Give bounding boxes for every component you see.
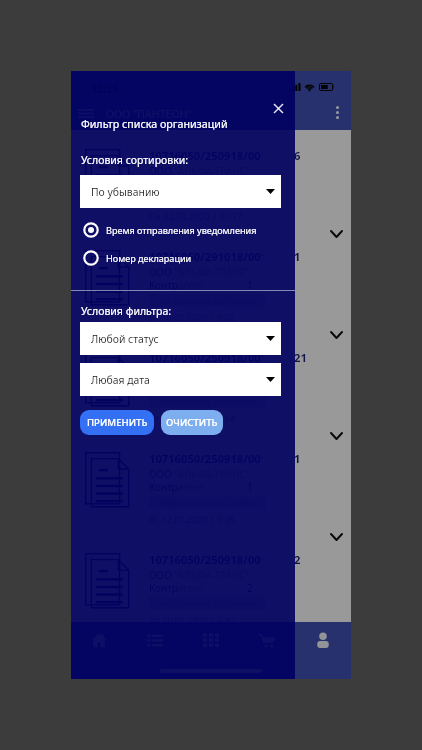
staticText: 10716050/250918/0012345: [149, 451, 263, 465]
button[interactable]: Expand: [322, 321, 350, 349]
button[interactable]: Номер декларации: [71, 246, 295, 270]
staticText: По убыванию: [91, 185, 160, 199]
staticText: ООО: [149, 265, 172, 279]
button[interactable]: Expand: [322, 422, 350, 450]
button[interactable]: Expand: [322, 624, 350, 652]
staticText: 6: [294, 148, 301, 163]
staticText: Фильтр списка организаций: [81, 117, 228, 132]
staticText: Пт 10.01.2020 | 5:42: [149, 614, 236, 626]
button[interactable]: 10716050/250918/0012345: [71, 442, 351, 543]
staticText: ОЧИСТИТЬ: [166, 416, 218, 429]
staticText: Контр: [149, 278, 178, 292]
staticText: ООО: [149, 467, 172, 481]
staticText: Любая дата: [91, 373, 150, 387]
staticText: 4: [294, 653, 301, 668]
staticText: Контр: [149, 581, 178, 595]
staticText: ООО: [149, 164, 172, 178]
staticText: Контр: [149, 480, 178, 494]
staticText: ПРИМЕНИТЬ: [87, 416, 148, 429]
staticText: 1: [247, 278, 253, 292]
staticText: Время отправления уведомления: [106, 224, 257, 236]
button[interactable]: 10716050/250918/0012342: [71, 341, 351, 442]
button[interactable]: По убыванию: [80, 175, 281, 208]
button[interactable]: Close: [265, 95, 291, 121]
staticText: 2: [247, 581, 253, 595]
staticText: Уведомление доставлено: [158, 194, 258, 205]
button[interactable]: Profile: [295, 622, 351, 658]
button[interactable]: Expand: [322, 523, 350, 551]
staticText: агент: [178, 278, 205, 292]
button[interactable]: ОЧИСТИТЬ: [161, 410, 223, 435]
button[interactable]: 10716050/291018/0012341: [71, 240, 351, 341]
staticText: Номер декларации: [106, 252, 192, 264]
staticText: "АЛЬФА-ТРАНС": [172, 164, 250, 178]
button[interactable]: Expand: [322, 220, 350, 248]
button[interactable]: 10716050/250918/0012311: [71, 644, 351, 679]
staticText: 1: [294, 451, 301, 466]
staticText: "АЛЬФА-ТРАНС": [172, 669, 250, 679]
button[interactable]: 10716050/250918/0012346: [71, 139, 351, 240]
button[interactable]: More options: [323, 95, 351, 130]
staticText: 10716050/250918/0012342: [149, 350, 263, 364]
button[interactable]: 10716050/250918/0012302: [71, 543, 351, 644]
button[interactable]: Любой статус: [80, 322, 281, 355]
staticText: 1: [294, 249, 301, 264]
staticText: ООО "ПАНТЕОН": [106, 107, 192, 121]
button[interactable]: ПРИМЕНИТЬ: [80, 410, 154, 435]
staticText: 10716050/291018/0012341: [149, 249, 263, 263]
staticText: ООО: [149, 568, 172, 582]
staticText: 10716050/250918/0012302: [149, 552, 263, 566]
staticText: ООО: [149, 669, 172, 679]
staticText: 2: [294, 552, 301, 567]
staticText: Любой статус: [91, 332, 159, 346]
button[interactable]: Время отправления уведомления: [71, 218, 295, 242]
staticText: Чт 22.01.2020 | 8:14: [149, 412, 236, 424]
staticText: Условия сортировки:: [81, 153, 189, 167]
staticText: Контр: [149, 177, 178, 191]
button[interactable]: Любая дата: [80, 363, 281, 396]
staticText: 12:25: [91, 82, 119, 96]
staticText: 21: [294, 350, 307, 365]
staticText: Вт 10.02.2020 | 9:02: [149, 311, 235, 323]
staticText: 10716050/250918/0012346: [149, 148, 263, 162]
staticText: Условия фильтра:: [81, 304, 172, 318]
button[interactable]: Menu: [74, 101, 98, 125]
